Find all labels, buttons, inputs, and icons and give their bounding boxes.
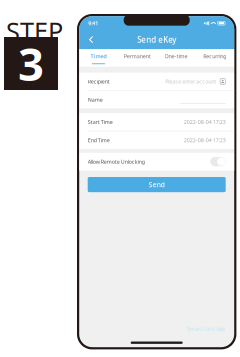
staticText: Recurring bbox=[203, 53, 226, 60]
staticText: Send bbox=[149, 180, 165, 189]
staticText: Name bbox=[88, 96, 103, 103]
staticText: Permanent bbox=[124, 53, 151, 60]
button[interactable]: Recurring bbox=[195, 49, 234, 67]
staticText: Recipient bbox=[88, 78, 110, 85]
staticText: Start Time bbox=[88, 118, 113, 125]
staticText: Timed bbox=[91, 53, 107, 60]
staticText: STEP bbox=[6, 14, 63, 48]
staticText: End Time bbox=[88, 137, 110, 144]
staticText: 2022-08-04 17:23 bbox=[184, 137, 226, 144]
staticText: 2022-08-04 17:23 bbox=[184, 118, 226, 125]
button[interactable]: One-time bbox=[157, 49, 195, 67]
button[interactable]: Send bbox=[88, 177, 226, 192]
staticText: 3 bbox=[18, 33, 44, 94]
staticText: 9:41 bbox=[88, 20, 98, 27]
staticText: Allow Remote Unlocking bbox=[88, 158, 145, 165]
button[interactable]: Allow Remote Unlocking bbox=[210, 157, 226, 166]
button[interactable]: Choose contact bbox=[216, 78, 226, 84]
button[interactable]: Permanent bbox=[118, 49, 157, 67]
staticText: One-time bbox=[165, 53, 188, 60]
button[interactable]: Timed bbox=[79, 49, 118, 67]
staticText: Smart Lock App bbox=[187, 325, 225, 332]
button[interactable]: Back bbox=[84, 32, 98, 47]
staticText: Send eKey bbox=[137, 34, 176, 45]
staticText: Please enter account bbox=[165, 78, 216, 85]
